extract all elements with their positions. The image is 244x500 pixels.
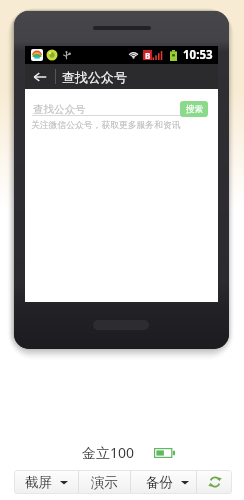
button[interactable]: Back bbox=[25, 64, 55, 89]
staticText: 查找公众号 bbox=[62, 69, 127, 85]
button[interactable]: Refresh bbox=[197, 470, 232, 494]
button[interactable]: 搜索 bbox=[180, 101, 208, 117]
button[interactable]: 演示 bbox=[79, 470, 130, 494]
staticText: 演示 bbox=[91, 474, 118, 491]
staticText: 搜索 bbox=[186, 104, 203, 115]
staticText: 关注微信公众号，获取更多服务和资讯 bbox=[31, 120, 181, 131]
button[interactable]: 截屏 bbox=[14, 470, 78, 494]
staticText: 备份 bbox=[146, 474, 173, 491]
staticText: 金立100 bbox=[82, 443, 135, 462]
staticText: 10:53 bbox=[183, 47, 213, 63]
staticText: 查找公众号 bbox=[33, 103, 86, 116]
staticText: B bbox=[145, 50, 151, 60]
button[interactable]: 备份 bbox=[131, 470, 196, 494]
staticText: 截屏 bbox=[25, 474, 52, 491]
